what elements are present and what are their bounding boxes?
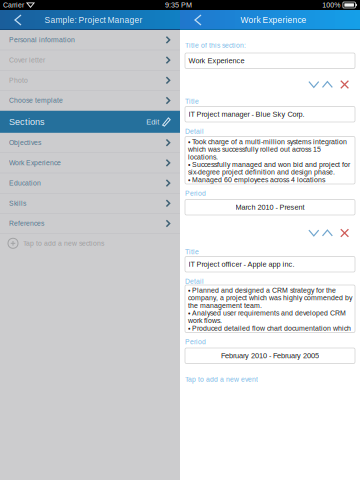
button[interactable]: Cover letter	[0, 50, 180, 70]
staticText: • Took charge of a multi-million systems…	[188, 138, 347, 146]
staticText: company, a project which was highly comm…	[188, 294, 352, 302]
button[interactable]: Choose template	[0, 91, 180, 111]
staticText: Work Experience	[188, 57, 244, 65]
staticText: References	[9, 220, 44, 227]
staticText: Tap to add a new event	[185, 376, 258, 383]
button[interactable]: Move up	[322, 81, 335, 88]
button[interactable]: Photo	[0, 70, 180, 91]
staticText: Photo	[9, 76, 28, 84]
staticText: Title	[185, 98, 199, 105]
staticText: work flows.	[188, 317, 222, 324]
staticText: February 2010 - February 2005	[221, 352, 319, 360]
staticText: Work Experience	[9, 159, 61, 167]
button[interactable]: References	[0, 214, 180, 234]
button[interactable]: Tap to add a new sections	[0, 234, 180, 253]
button[interactable]: Skills	[0, 193, 180, 214]
staticText: Tap to add a new sections	[23, 239, 104, 247]
staticText: Personal information	[9, 36, 75, 44]
staticText: Title	[185, 248, 199, 256]
staticText: Sections	[9, 117, 45, 127]
staticText: Period	[185, 338, 206, 346]
staticText: Edit	[146, 118, 159, 126]
button[interactable]: Tap to add a new event	[185, 375, 355, 383]
button[interactable]: Objectives	[0, 133, 180, 153]
staticText: • Managed 60 employees across 4 location…	[188, 176, 325, 184]
staticText: locations.	[188, 153, 218, 161]
staticText: the management team.	[188, 302, 262, 309]
staticText: Cover letter	[9, 56, 45, 64]
staticText: which was successfully rolled out across…	[188, 145, 321, 153]
button[interactable]: Move down	[308, 229, 322, 237]
button[interactable]: Back	[0, 10, 27, 30]
staticText: Sample: Project Manager	[44, 15, 142, 25]
staticText: • Planned and designed a CRM strategy fo…	[188, 286, 336, 294]
staticText: Period	[185, 190, 206, 197]
staticText: Detail	[185, 278, 204, 285]
staticText: IT Project officer - Apple app inc.	[188, 260, 294, 268]
button[interactable]: Move down	[308, 81, 322, 88]
button[interactable]: Back	[180, 10, 207, 30]
staticText: Work Experience	[240, 15, 306, 25]
staticText: Title of this section:	[185, 42, 246, 49]
button[interactable]: Personal information	[0, 30, 180, 50]
staticText: 100%	[322, 1, 340, 9]
staticText: Education	[9, 179, 41, 187]
staticText: Skills	[9, 199, 26, 207]
staticText: Detail	[185, 128, 204, 135]
button[interactable]: Edit	[146, 111, 171, 133]
staticText: Objectives	[9, 139, 41, 146]
button[interactable]: Work Experience	[0, 153, 180, 173]
staticText: Choose template	[9, 97, 63, 104]
button[interactable]: Move up	[322, 229, 335, 237]
staticText: IT Project manager - Blue Sky Corp.	[188, 110, 304, 118]
staticText: six-degree project definition and design…	[188, 168, 335, 176]
staticText: Carrier	[3, 1, 24, 9]
button[interactable]: Delete	[335, 228, 355, 238]
staticText: • Successfully managed and won bid and p…	[188, 161, 350, 168]
staticText: March 2010 - Present	[235, 203, 304, 211]
button[interactable]: Education	[0, 173, 180, 193]
staticText: • Produced detailed flow chart documenta…	[188, 324, 351, 332]
staticText: 9:35 PM	[165, 1, 192, 9]
staticText: • Analysed user requirements and develop…	[188, 309, 346, 317]
button[interactable]: Delete	[335, 80, 355, 89]
